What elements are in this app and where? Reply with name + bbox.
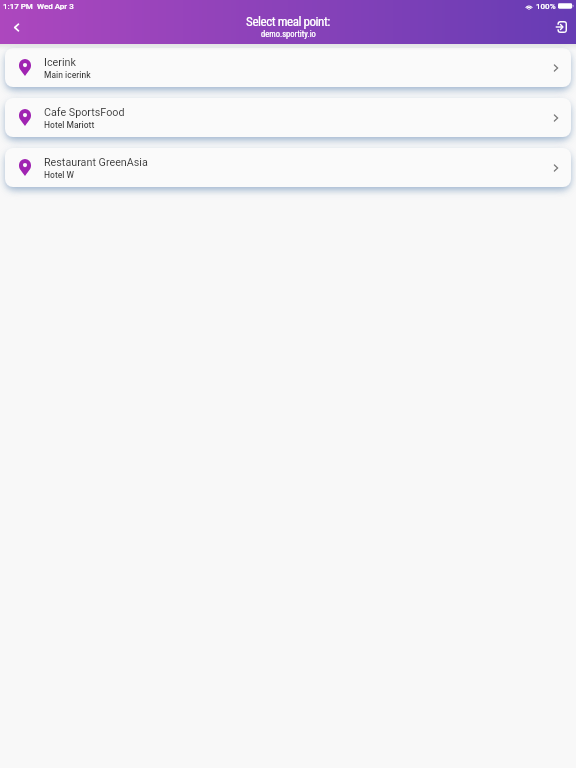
staticText: Hotel Mariott: [44, 120, 95, 130]
staticText: 1:17 PM: [3, 2, 33, 11]
button[interactable]: Restaurant GreenAsia: [5, 148, 571, 187]
staticText: 100%: [536, 2, 556, 11]
staticText: Wed Apr 3: [37, 2, 74, 11]
staticText: Select meal point:: [246, 14, 330, 29]
button[interactable]: Cafe SportsFood: [5, 98, 571, 137]
button[interactable]: Back: [0, 13, 32, 41]
staticText: Icerink: [44, 56, 76, 69]
button[interactable]: Log out: [546, 13, 576, 41]
staticText: Hotel W: [44, 170, 75, 180]
staticText: demo.sportity.io: [261, 29, 316, 39]
button[interactable]: Icerink: [5, 48, 571, 87]
staticText: Cafe SportsFood: [44, 106, 125, 119]
staticText: Restaurant GreenAsia: [44, 156, 148, 169]
staticText: Main icerink: [44, 70, 91, 80]
